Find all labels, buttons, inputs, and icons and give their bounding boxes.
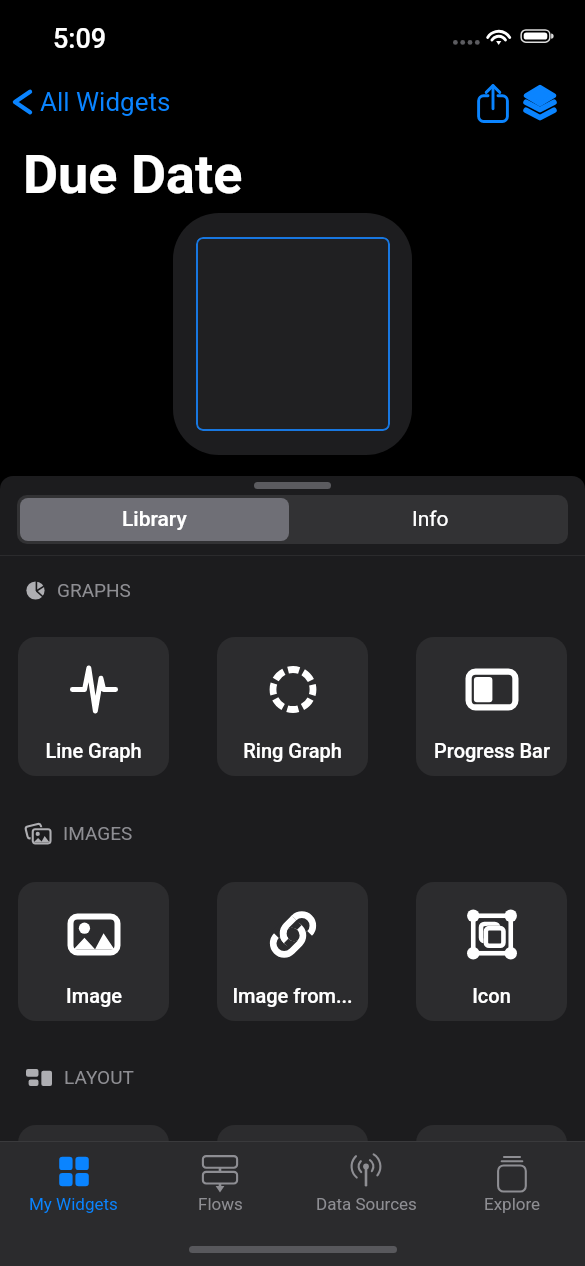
button[interactable] — [217, 1125, 368, 1264]
button[interactable] — [416, 1125, 567, 1264]
button[interactable]: Line Graph — [18, 637, 169, 776]
button[interactable]: Image — [18, 882, 169, 1021]
staticText: Info — [412, 507, 449, 532]
button[interactable]: Explore — [439, 1141, 585, 1227]
staticText: Progress Bar — [434, 739, 550, 762]
staticText: Explore — [484, 1194, 541, 1214]
staticText: Due Date — [23, 143, 243, 206]
button[interactable]: Progress Bar — [416, 637, 567, 776]
staticText: Icon — [472, 984, 511, 1007]
button[interactable]: Layers — [517, 77, 563, 123]
button[interactable]: Image from... — [217, 882, 368, 1021]
staticText: 5:09 — [53, 23, 107, 55]
button[interactable]: Ring Graph — [217, 637, 368, 776]
staticText: Library — [122, 507, 187, 532]
staticText: Data Sources — [316, 1194, 417, 1214]
staticText: Flows — [198, 1194, 243, 1214]
staticText: Line Graph — [45, 739, 142, 762]
button[interactable]: Info — [292, 495, 568, 544]
staticText: All Widgets — [40, 87, 171, 117]
button[interactable]: All Widgets — [7, 86, 171, 118]
staticText: My Widgets — [29, 1194, 118, 1214]
staticText: Image from... — [232, 984, 353, 1007]
button[interactable]: Icon — [416, 882, 567, 1021]
staticText: Image — [66, 984, 122, 1007]
button[interactable]: Data Sources — [293, 1141, 439, 1227]
staticText: IMAGES — [63, 822, 133, 844]
button[interactable]: Library — [20, 498, 289, 541]
staticText: LAYOUT — [64, 1066, 134, 1088]
staticText: GRAPHS — [57, 579, 131, 601]
button[interactable]: My Widgets — [0, 1141, 147, 1227]
button[interactable]: Flows — [147, 1141, 293, 1227]
button[interactable]: Share — [470, 77, 516, 123]
button[interactable] — [18, 1125, 169, 1264]
staticText: Ring Graph — [243, 739, 342, 762]
